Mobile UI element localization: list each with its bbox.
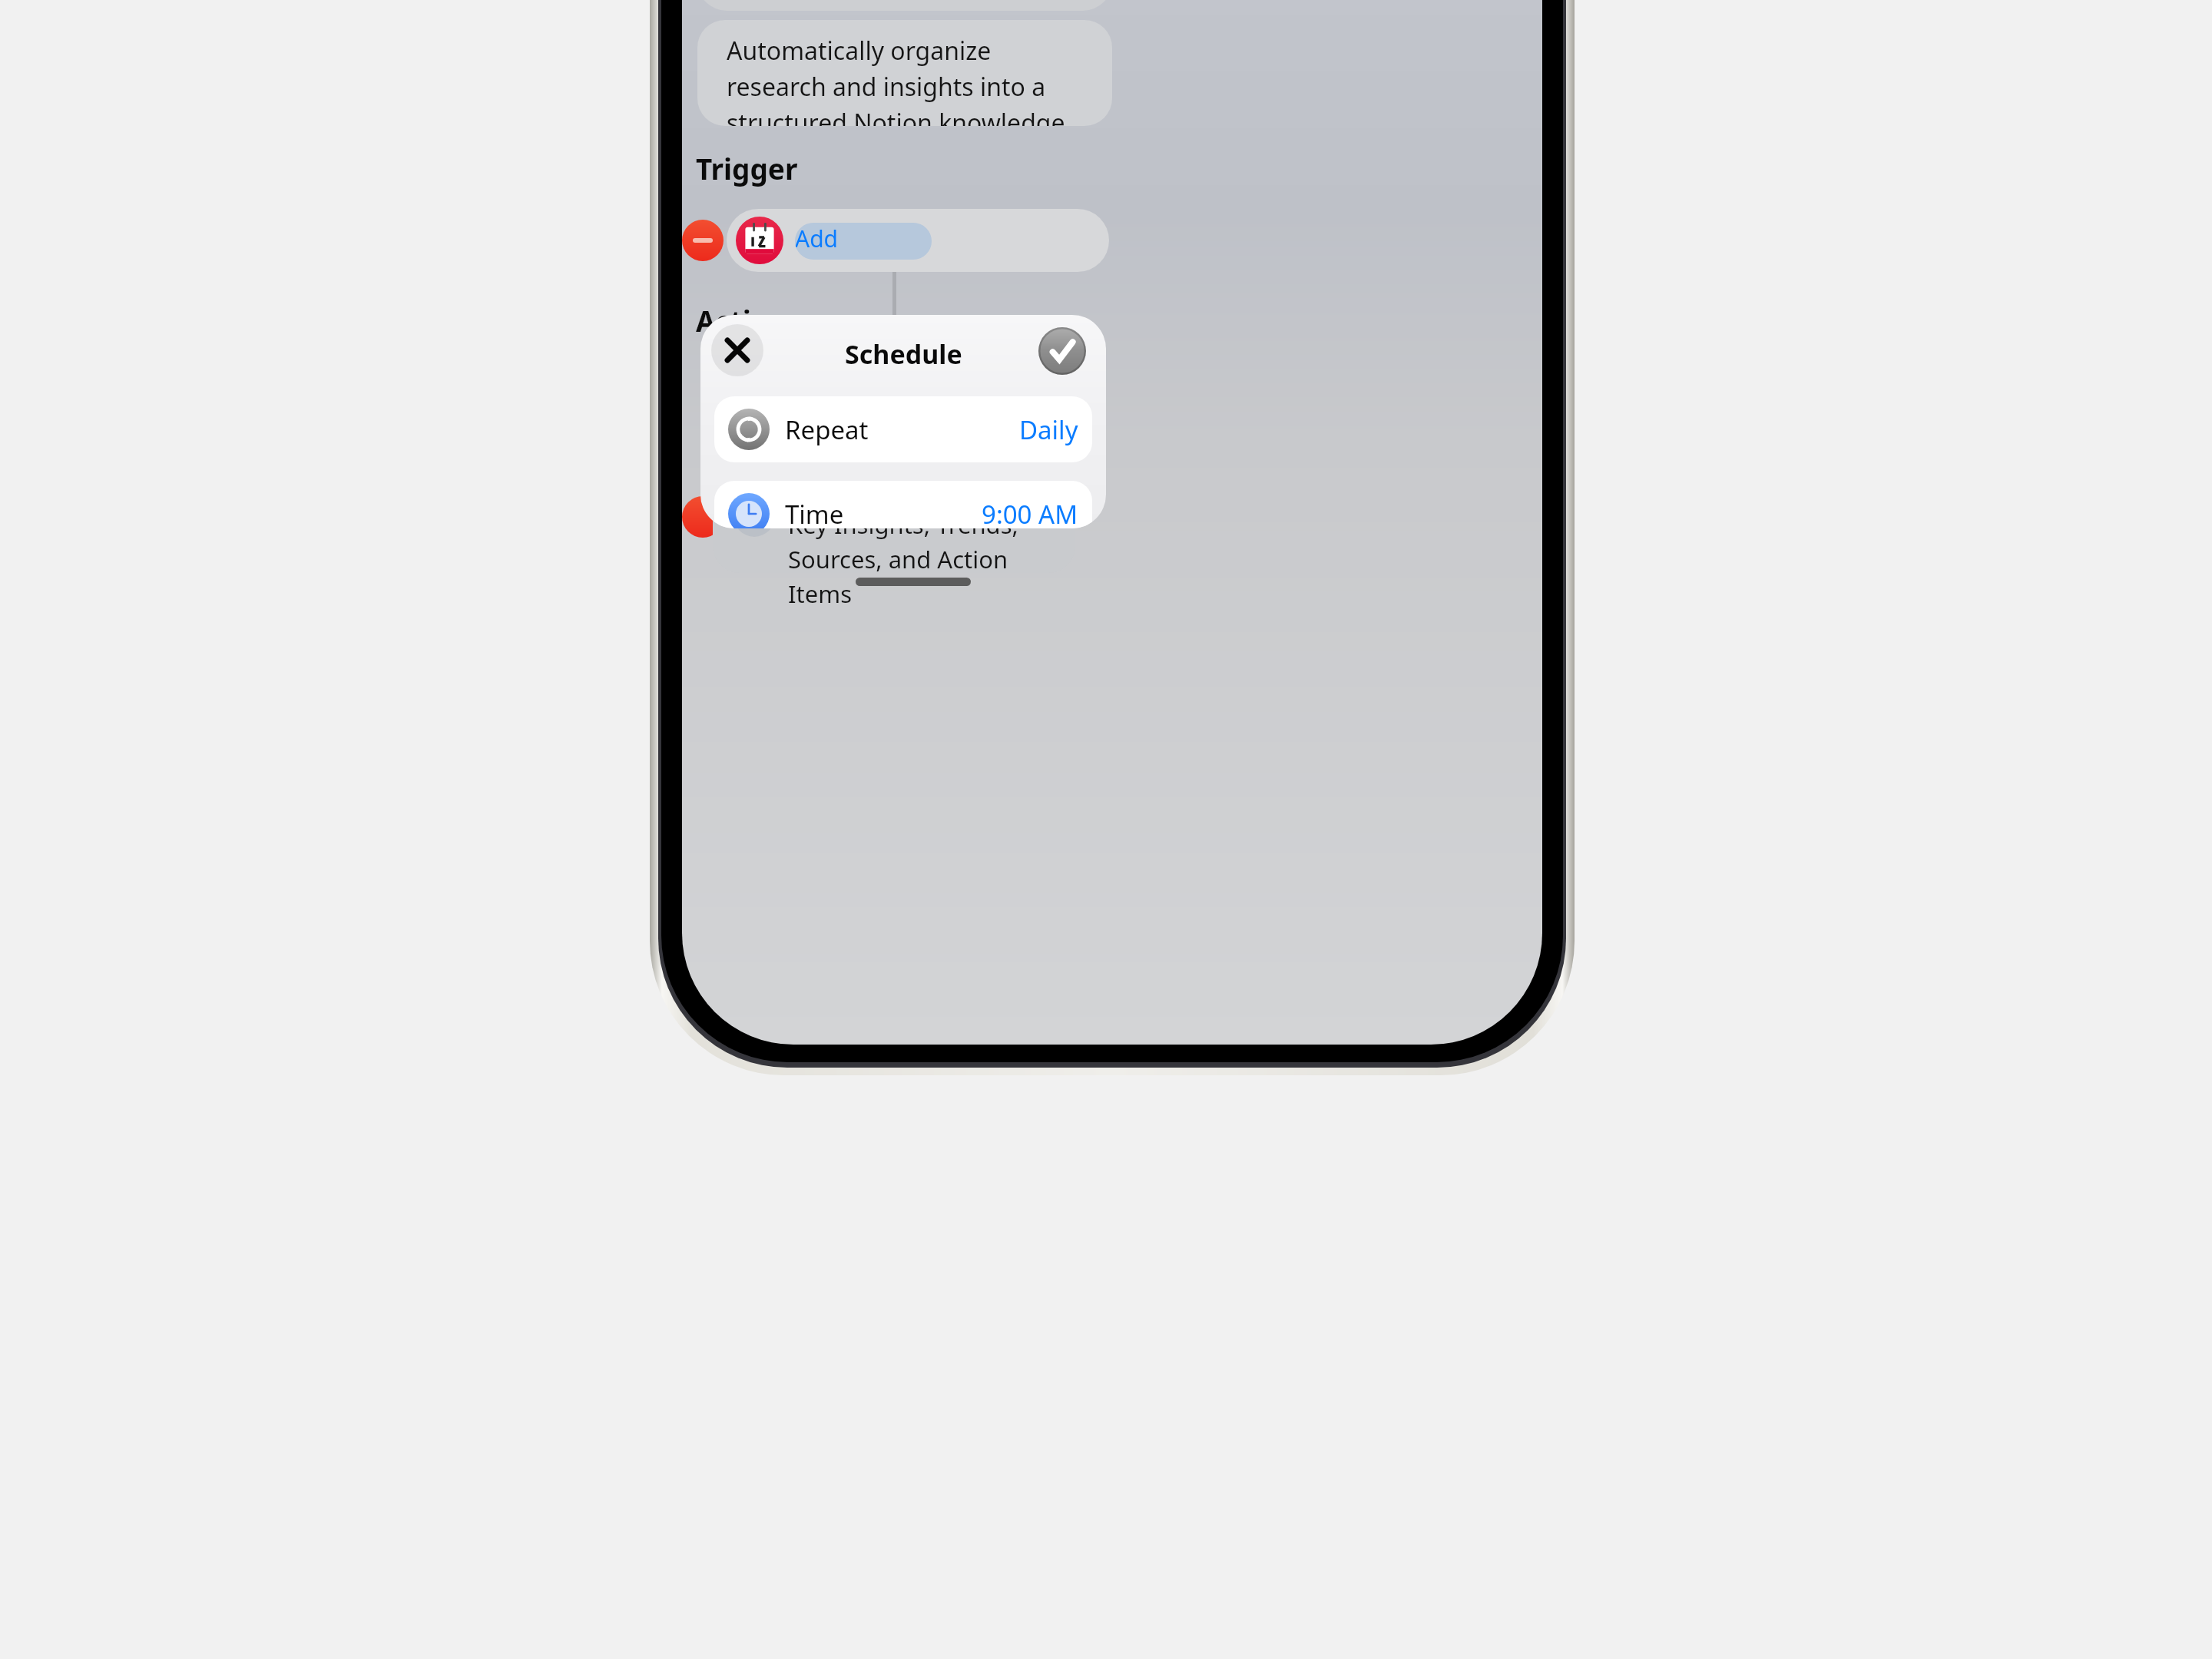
button[interactable]: Done bbox=[1038, 327, 1086, 375]
staticText: Time bbox=[785, 497, 844, 528]
staticText: Trigger bbox=[696, 149, 798, 187]
button[interactable]: Remove trigger bbox=[682, 220, 724, 261]
staticText: Key Insights, Trends, Sources, and Actio… bbox=[788, 508, 1025, 610]
staticText: Daily bbox=[1019, 412, 1078, 447]
staticText: Schedule bbox=[845, 336, 962, 372]
button[interactable]: Time bbox=[714, 481, 1092, 528]
staticText: 9:00 AM bbox=[982, 497, 1078, 528]
staticText: Repeat bbox=[785, 412, 869, 447]
staticText: Add schedule bbox=[795, 223, 932, 260]
staticText: Automatically organize research and insi… bbox=[727, 34, 1095, 126]
button[interactable]: Add schedule bbox=[795, 223, 932, 260]
button[interactable]: Automatically organize research and insi… bbox=[697, 20, 1112, 126]
button[interactable]: Repeat bbox=[714, 396, 1092, 462]
button[interactable]: Close bbox=[711, 324, 763, 376]
staticText: Actions bbox=[696, 301, 802, 339]
